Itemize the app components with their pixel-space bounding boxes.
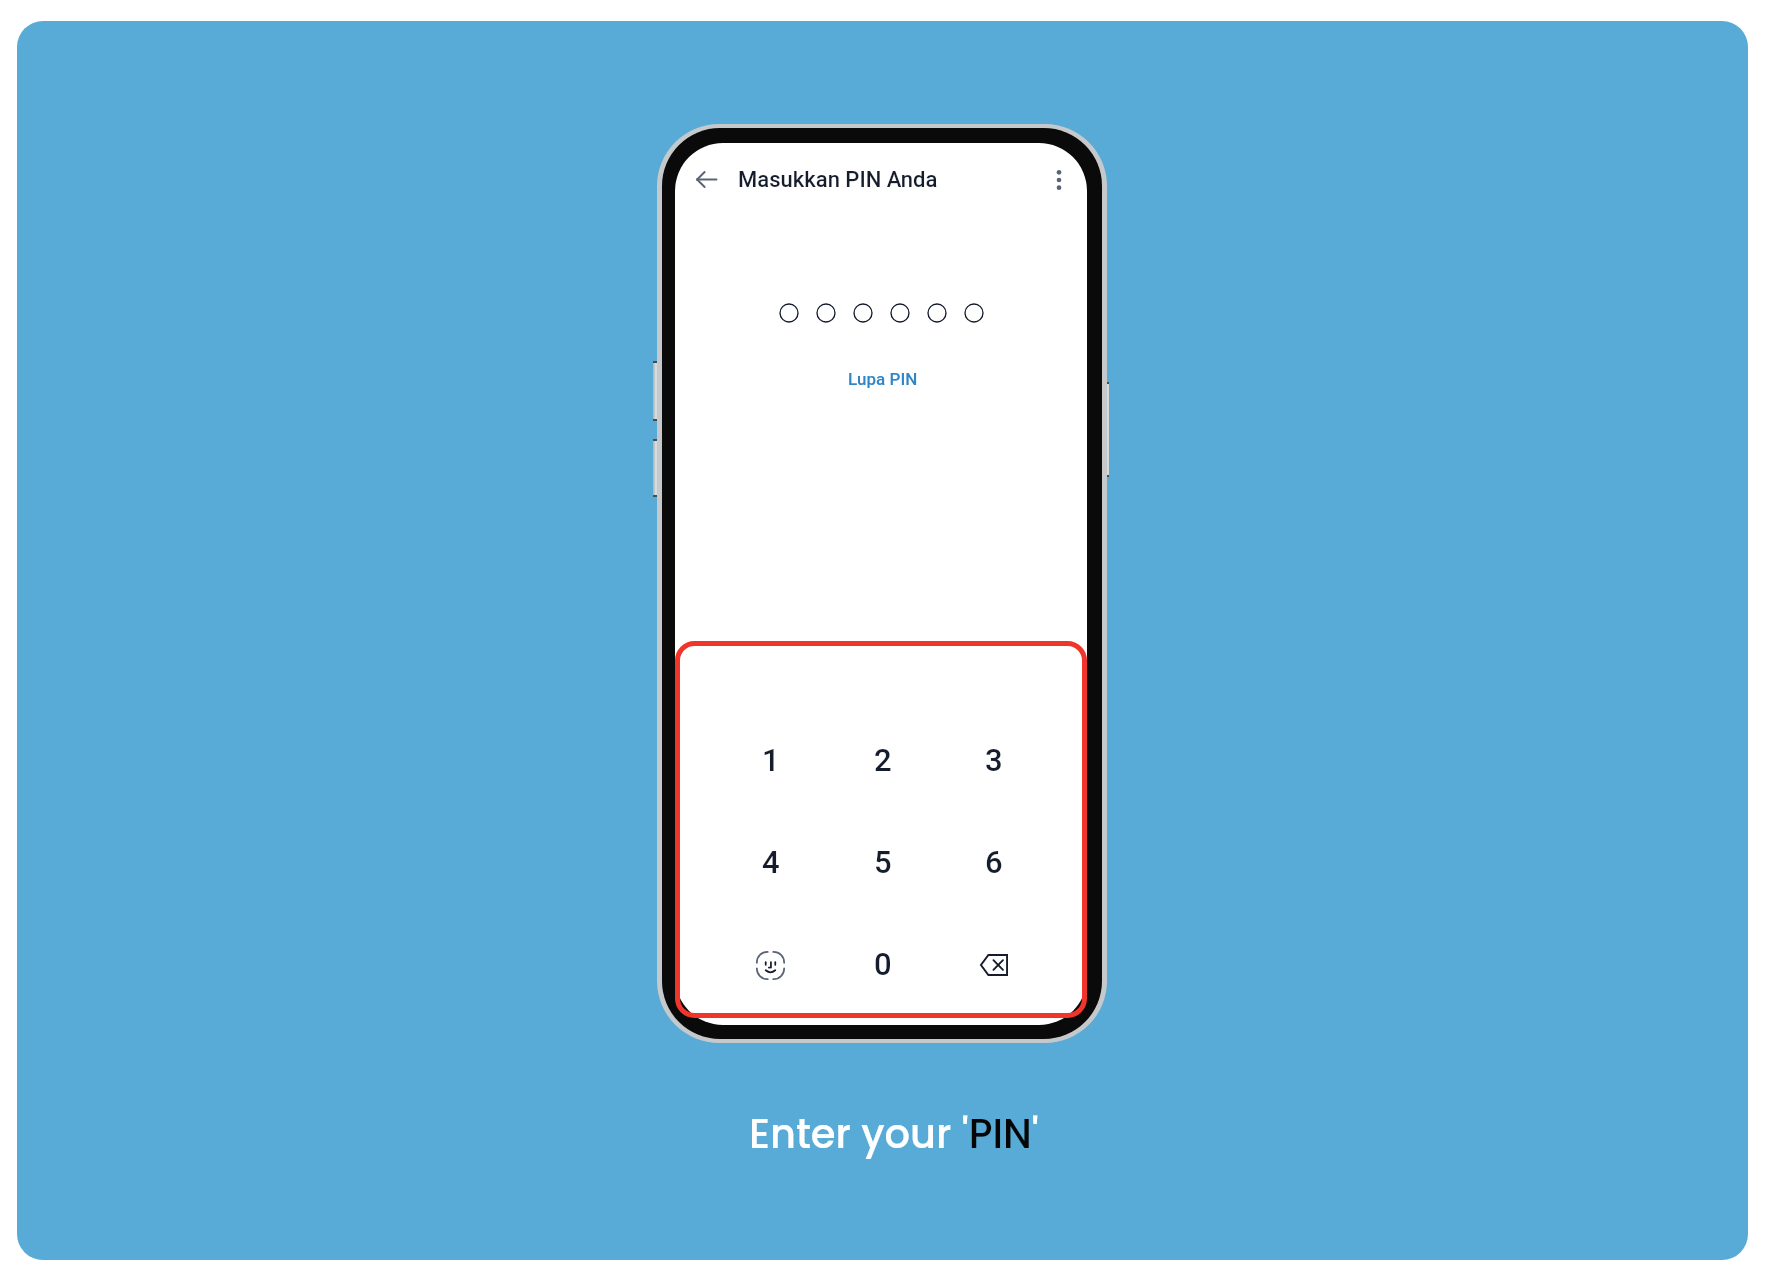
button[interactable]: Face ID <box>727 935 813 995</box>
staticText: 2 <box>874 742 892 778</box>
staticText: Enter your 'PIN' <box>749 1106 1039 1162</box>
button[interactable]: Lupa PIN <box>840 364 926 394</box>
button[interactable]: 3 <box>951 730 1037 790</box>
staticText: Lupa PIN <box>848 369 918 389</box>
staticText: 4 <box>762 844 780 880</box>
staticText: 3 <box>985 742 1003 778</box>
button[interactable]: Backspace <box>951 935 1037 995</box>
staticText: Masukkan PIN Anda <box>738 167 938 193</box>
staticText: 0 <box>874 946 892 982</box>
staticText: 1 <box>762 742 780 778</box>
staticText: 6 <box>985 844 1003 880</box>
button[interactable]: 0 <box>840 934 926 994</box>
button[interactable]: More options <box>1043 164 1074 195</box>
button[interactable]: 5 <box>840 832 926 892</box>
staticText: 5 <box>874 844 892 880</box>
button[interactable]: Back <box>689 162 723 196</box>
button[interactable]: 6 <box>951 832 1037 892</box>
button[interactable]: 4 <box>728 832 814 892</box>
button[interactable]: 1 <box>728 730 814 790</box>
button[interactable]: 2 <box>840 730 926 790</box>
